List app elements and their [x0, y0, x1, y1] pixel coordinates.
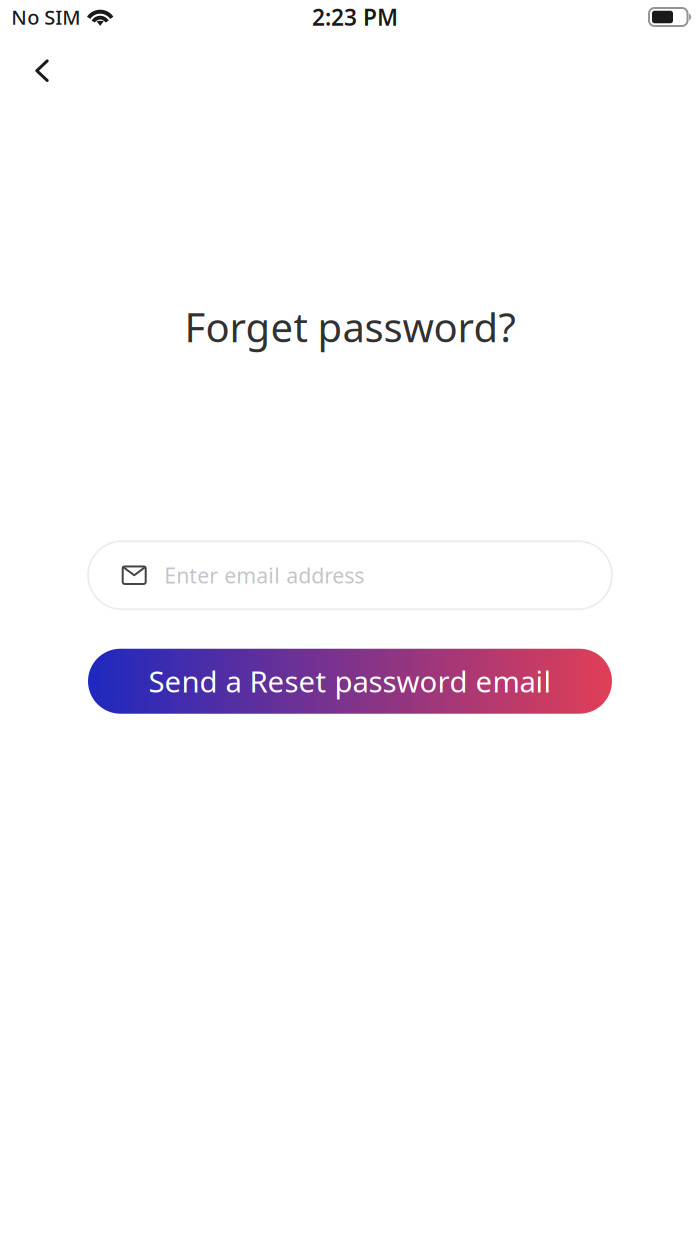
staticText: Enter email address [164, 561, 364, 589]
staticText: 2:23 PM [312, 2, 398, 32]
staticText: Send a Reset password email [148, 662, 551, 701]
button[interactable]: Enter email address [88, 541, 612, 609]
button[interactable]: Send a Reset password email [88, 649, 612, 714]
button[interactable]: Back [0, 34, 71, 96]
staticText: No SIM [11, 4, 80, 30]
staticText: Forget password? [184, 300, 515, 353]
